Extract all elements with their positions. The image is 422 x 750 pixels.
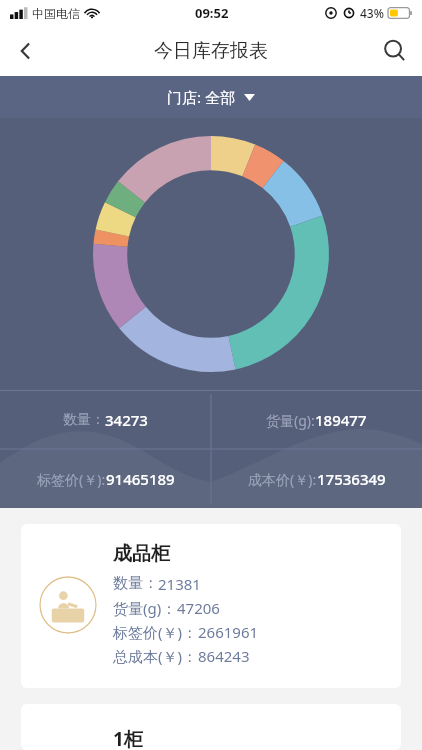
staticText: 47206 bbox=[177, 598, 220, 618]
staticText: 成品柜 bbox=[113, 542, 170, 566]
staticText: 2661961 bbox=[198, 622, 259, 642]
staticText: 91465189 bbox=[106, 469, 175, 489]
button[interactable]: 货量(g): bbox=[211, 390, 422, 449]
staticText: 864243 bbox=[198, 646, 250, 666]
staticText: 标签价(￥)： bbox=[113, 622, 198, 642]
button[interactable]: 门店: 全部 bbox=[0, 76, 422, 118]
staticText: 总成本(￥)： bbox=[113, 646, 198, 666]
button[interactable]: Search bbox=[368, 26, 422, 76]
staticText: 21381 bbox=[158, 574, 201, 594]
button[interactable]: 数量： bbox=[0, 390, 211, 449]
staticText: 货量(g)： bbox=[113, 598, 177, 618]
staticText: 标签价(￥): bbox=[37, 470, 106, 489]
staticText: 09:52 bbox=[195, 4, 229, 22]
staticText: 数量： bbox=[113, 574, 158, 593]
staticText: 43% bbox=[360, 5, 384, 21]
staticText: 今日库存报表 bbox=[154, 39, 268, 63]
staticText: 数量： bbox=[63, 411, 105, 429]
staticText: 货量(g): bbox=[266, 411, 315, 430]
button[interactable]: 标签价(￥): bbox=[0, 449, 211, 508]
staticText: 门店: 全部 bbox=[167, 87, 235, 107]
button[interactable]: 1柜 bbox=[21, 704, 401, 750]
staticText: 中国电信 bbox=[32, 6, 80, 21]
staticText: 189477 bbox=[315, 410, 367, 430]
staticText: 34273 bbox=[105, 410, 148, 430]
button[interactable]: Back bbox=[0, 26, 52, 76]
staticText: 1柜 bbox=[113, 726, 143, 750]
button[interactable]: 成本价(￥): bbox=[211, 449, 422, 508]
staticText: 成本价(￥): bbox=[248, 470, 317, 489]
button[interactable]: 成品柜 bbox=[21, 524, 401, 688]
staticText: 17536349 bbox=[317, 469, 386, 489]
